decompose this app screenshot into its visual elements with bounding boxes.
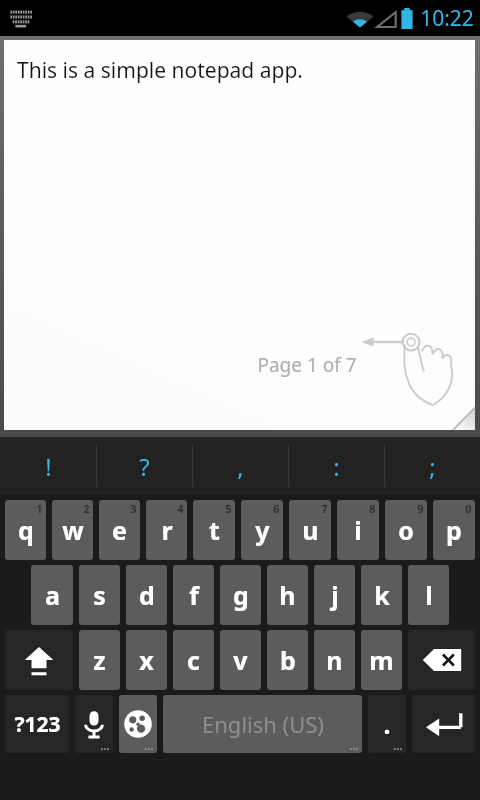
staticText: w — [62, 513, 84, 547]
staticText: 10:22 — [420, 4, 474, 33]
button[interactable]: Voice input — [75, 695, 113, 753]
staticText: z — [93, 643, 106, 677]
button[interactable]: a — [31, 565, 73, 625]
button[interactable]: b — [267, 630, 308, 690]
staticText: x — [139, 643, 154, 677]
staticText: 8 — [369, 501, 376, 516]
staticText: : — [333, 450, 340, 483]
staticText: i — [354, 513, 362, 547]
staticText: v — [233, 643, 248, 677]
staticText: b — [280, 643, 296, 677]
staticText: , — [237, 450, 244, 483]
button[interactable]: q — [5, 500, 46, 560]
staticText: l — [425, 578, 433, 612]
staticText: ! — [45, 450, 52, 483]
button[interactable]: ; — [384, 437, 480, 495]
button[interactable]: y — [241, 500, 283, 560]
button[interactable]: c — [173, 630, 214, 690]
staticText: h — [279, 578, 296, 612]
staticText: t — [209, 513, 220, 547]
staticText: . — [383, 707, 391, 741]
button[interactable]: t — [193, 500, 235, 560]
staticText: u — [302, 513, 319, 547]
button[interactable]: English (US) — [163, 695, 362, 753]
staticText: 6 — [273, 501, 280, 516]
staticText: 1 — [36, 501, 43, 516]
button[interactable]: f — [173, 565, 214, 625]
staticText: ... — [393, 738, 403, 753]
staticText: m — [369, 643, 394, 677]
button[interactable]: : — [288, 437, 384, 495]
staticText: 2 — [83, 501, 90, 516]
button[interactable]: i — [337, 500, 379, 560]
button[interactable]: w — [52, 500, 93, 560]
button[interactable]: s — [79, 565, 120, 625]
staticText: 7 — [321, 501, 328, 516]
button[interactable]: d — [126, 565, 167, 625]
button[interactable]: o — [385, 500, 427, 560]
button[interactable]: u — [289, 500, 331, 560]
button[interactable]: v — [220, 630, 261, 690]
button[interactable]: This is a simple notepad app. — [4, 40, 475, 430]
staticText: ? — [139, 450, 150, 483]
staticText: d — [139, 578, 155, 612]
staticText: ... — [349, 738, 359, 753]
staticText: a — [45, 578, 60, 612]
button[interactable]: p — [433, 500, 475, 560]
staticText: j — [331, 578, 339, 612]
button[interactable]: Backspace — [408, 630, 475, 690]
button[interactable]: ! — [0, 437, 96, 495]
button[interactable]: g — [220, 565, 261, 625]
button[interactable]: m — [361, 630, 402, 690]
button[interactable]: x — [126, 630, 167, 690]
staticText: ... — [144, 738, 154, 753]
staticText: c — [187, 643, 200, 677]
button[interactable]: k — [361, 565, 402, 625]
staticText: This is a simple notepad app. — [17, 56, 303, 85]
staticText: n — [326, 643, 343, 677]
staticText: p — [446, 513, 462, 547]
staticText: q — [18, 513, 34, 547]
button[interactable]: . — [368, 695, 406, 753]
staticText: 9 — [417, 501, 424, 516]
button[interactable]: Shift — [5, 630, 73, 690]
button[interactable]: ? — [96, 437, 192, 495]
staticText: 0 — [465, 501, 472, 516]
button[interactable]: r — [146, 500, 187, 560]
staticText: ?123 — [14, 710, 61, 739]
button[interactable]: h — [267, 565, 308, 625]
staticText: o — [398, 513, 414, 547]
staticText: English (US) — [202, 709, 324, 739]
staticText: 5 — [225, 501, 232, 516]
staticText: y — [255, 513, 270, 547]
staticText: Page 1 of 7 — [257, 352, 357, 378]
staticText: 4 — [177, 501, 184, 516]
staticText: e — [112, 513, 127, 547]
staticText: ; — [429, 450, 436, 483]
staticText: g — [233, 578, 249, 612]
button[interactable]: Enter — [412, 695, 475, 753]
staticText: k — [374, 578, 390, 612]
staticText: ... — [100, 738, 110, 753]
staticText: s — [93, 578, 106, 612]
button[interactable]: l — [408, 565, 449, 625]
staticText: r — [161, 513, 173, 547]
button[interactable]: j — [314, 565, 355, 625]
button[interactable]: ?123 — [5, 695, 69, 753]
button[interactable]: n — [314, 630, 355, 690]
other: Keyboard active — [8, 9, 34, 27]
staticText: f — [189, 578, 199, 612]
button[interactable]: z — [79, 630, 120, 690]
button[interactable]: e — [99, 500, 140, 560]
staticText: 3 — [130, 501, 137, 516]
button[interactable]: , — [192, 437, 288, 495]
button[interactable]: Change language — [119, 695, 157, 753]
